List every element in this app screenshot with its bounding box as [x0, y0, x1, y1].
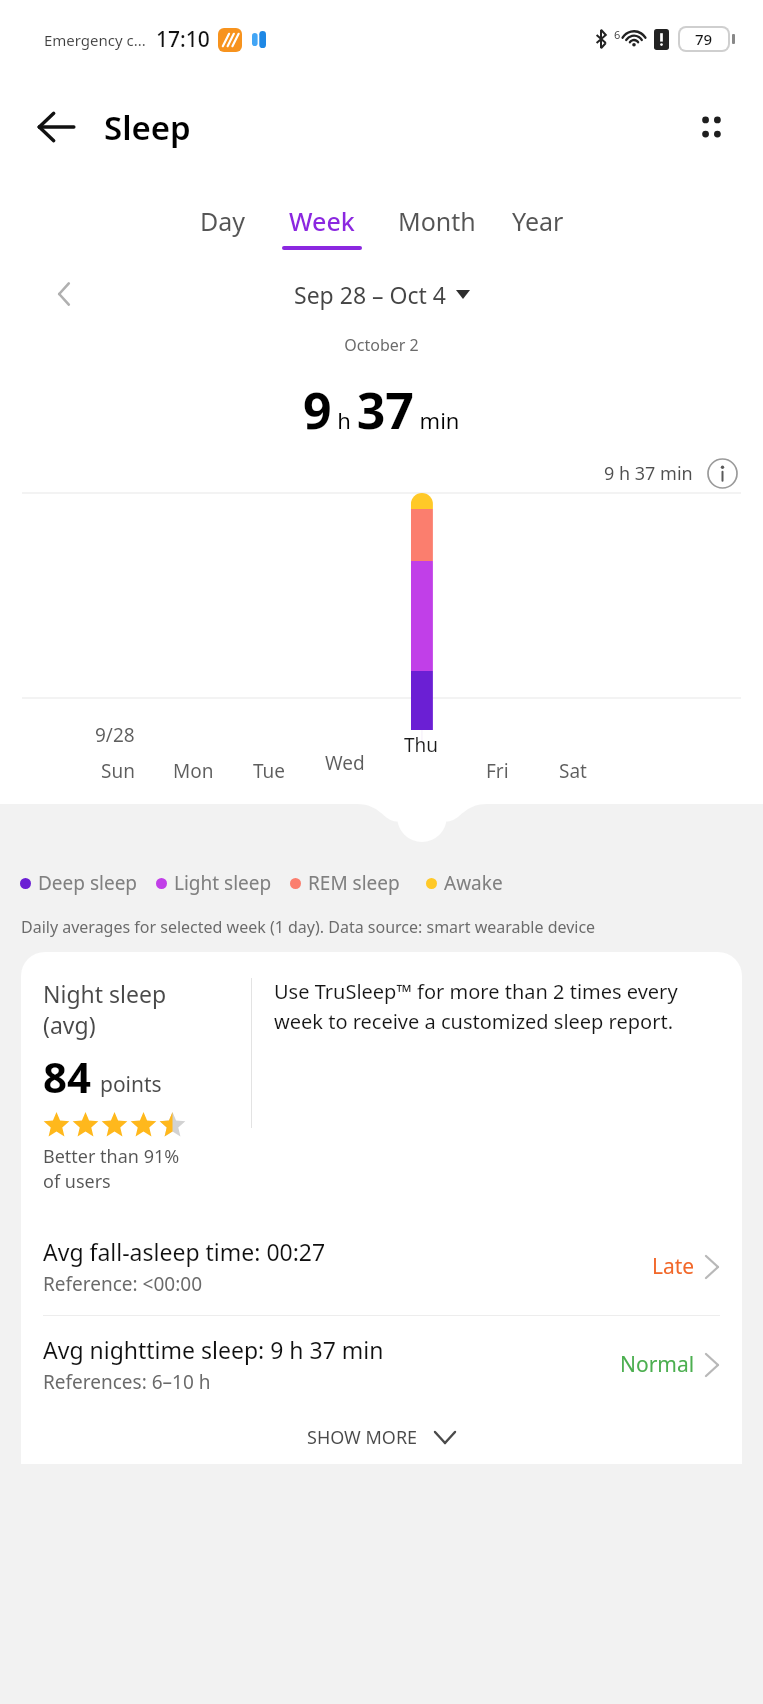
button[interactable]: Month	[380, 204, 494, 250]
staticText: Fri	[486, 758, 509, 784]
staticText: Week	[289, 204, 355, 238]
staticText: SHOW MORE	[307, 1425, 418, 1450]
staticText: Day	[200, 204, 246, 238]
staticText: Reference: <00:00	[43, 1271, 203, 1297]
button[interactable]: SHOW MORE	[21, 1413, 742, 1464]
staticText: 9 h 37 min	[604, 461, 693, 486]
staticText: Deep sleep	[38, 870, 138, 896]
staticText: Sleep	[104, 105, 191, 150]
button[interactable]: Day	[182, 204, 264, 250]
staticText: 84	[43, 1048, 92, 1105]
staticText: Emergency c...	[44, 30, 146, 50]
staticText: points	[100, 1070, 162, 1099]
staticText: Year	[512, 204, 564, 238]
staticText: (avg)	[43, 1009, 96, 1040]
button[interactable]: Year	[494, 204, 582, 250]
staticText: References: 6–10 h	[43, 1369, 211, 1395]
staticText: 9 h 37 min	[303, 376, 460, 444]
staticText: Normal	[620, 1350, 695, 1379]
staticText: Night sleep	[43, 978, 167, 1009]
staticText: Light sleep	[174, 870, 272, 896]
staticText: Better than 91%	[43, 1144, 180, 1169]
button[interactable]: Back	[30, 101, 82, 153]
staticText: Mon	[173, 758, 214, 784]
staticText: REM sleep	[308, 870, 400, 896]
button[interactable]: Avg fall-asleep time: 00:27	[21, 1218, 742, 1315]
staticText: Month	[398, 204, 476, 238]
staticText: Tue	[253, 758, 286, 784]
staticText: Sun	[101, 758, 135, 784]
staticText: Avg nighttime sleep: 9 h 37 min	[43, 1334, 384, 1365]
staticText: Use TruSleep™ for more than 2 times ever…	[274, 978, 728, 1035]
button[interactable]: Info	[705, 456, 739, 490]
staticText: October 2	[0, 334, 763, 356]
staticText: 9/28	[95, 722, 135, 748]
staticText: 17:10	[156, 25, 210, 54]
staticText: 6	[614, 27, 621, 42]
staticText: Sat	[559, 758, 587, 784]
staticText: of users	[43, 1169, 111, 1194]
staticText: Daily averages for selected week (1 day)…	[21, 916, 742, 938]
staticText: Avg fall-asleep time: 00:27	[43, 1236, 326, 1267]
button[interactable]: Previous week	[42, 272, 86, 316]
button[interactable]: More options	[683, 99, 739, 155]
button[interactable]: Sep 28 – Oct 4	[294, 279, 470, 310]
staticText: Late	[652, 1252, 695, 1281]
staticText: 79	[695, 29, 713, 49]
staticText: Sep 28 – Oct 4	[294, 279, 446, 310]
staticText: Wed	[325, 750, 365, 776]
button[interactable]: Week	[264, 204, 380, 250]
staticText: Awake	[444, 870, 503, 896]
staticText: Thu	[404, 732, 439, 758]
button[interactable]: Avg nighttime sleep: 9 h 37 min	[21, 1316, 742, 1413]
